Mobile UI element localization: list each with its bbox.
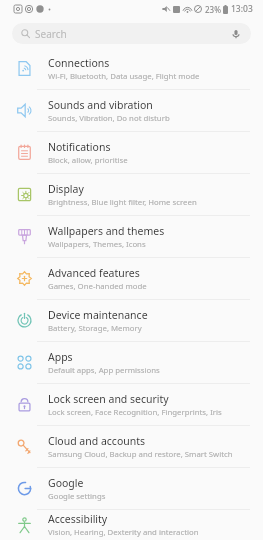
staticText: Search [35, 27, 67, 41]
staticText: Wallpapers and themes [48, 224, 165, 238]
button[interactable]: Sounds and vibration [0, 90, 263, 132]
button[interactable]: Cloud and accounts [0, 426, 263, 468]
button[interactable]: Advanced features [0, 258, 263, 300]
staticText: Google [48, 476, 84, 490]
staticText: Brightness, Blue light filter, Home scre… [48, 197, 197, 208]
button[interactable]: Notifications [0, 132, 263, 174]
button[interactable]: Lock screen and security [0, 384, 263, 426]
button[interactable]: Search [12, 23, 251, 44]
staticText: Vision, Hearing, Dexterity and interacti… [48, 527, 199, 538]
button[interactable]: Wallpapers and themes [0, 216, 263, 258]
staticText: Wi-Fi, Bluetooth, Data usage, Flight mod… [48, 71, 200, 82]
staticText: 23% [205, 4, 221, 15]
staticText: Accessibility [48, 512, 108, 526]
staticText: Connections [48, 56, 110, 70]
button[interactable]: Google [0, 468, 263, 510]
staticText: Block, allow, prioritise [48, 155, 128, 166]
staticText: Notifications [48, 140, 111, 154]
staticText: Apps [48, 350, 73, 364]
staticText: 13:03 [231, 3, 253, 15]
button[interactable]: Display [0, 174, 263, 216]
staticText: Lock screen, Face Recognition, Fingerpri… [48, 407, 222, 418]
button[interactable]: Accessibility [0, 510, 263, 540]
staticText: Sounds and vibration [48, 98, 153, 112]
button[interactable]: Voice search [230, 28, 242, 40]
staticText: Battery, Storage, Memory [48, 323, 142, 334]
staticText: Cloud and accounts [48, 434, 146, 448]
staticText: Advanced features [48, 266, 140, 280]
staticText: Samsung Cloud, Backup and restore, Smart… [48, 449, 233, 460]
staticText: Sounds, Vibration, Do not disturb [48, 113, 170, 124]
staticText: Default apps, App permissions [48, 365, 160, 376]
staticText: Google settings [48, 491, 106, 502]
button[interactable]: Apps [0, 342, 263, 384]
staticText: Games, One-handed mode [48, 281, 147, 292]
staticText: Wallpapers, Themes, Icons [48, 239, 146, 250]
button[interactable]: Connections [0, 48, 263, 90]
staticText: Lock screen and security [48, 392, 169, 406]
staticText: Display [48, 182, 84, 196]
button[interactable]: Device maintenance [0, 300, 263, 342]
staticText: Device maintenance [48, 308, 148, 322]
